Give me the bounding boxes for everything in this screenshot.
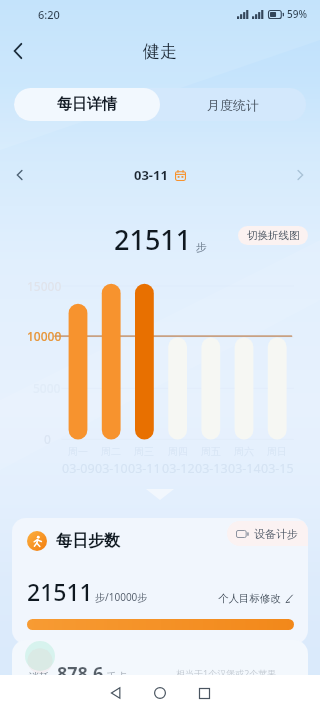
button[interactable]: 切换折线图 — [238, 226, 308, 245]
staticText: 每日步数 — [56, 531, 120, 551]
staticText: 周四 — [168, 445, 188, 458]
staticText: 相当于1个汉堡或2个苹果 — [176, 667, 277, 679]
button[interactable]: 每日详情 — [14, 88, 160, 121]
staticText: 月度统计 — [207, 97, 259, 113]
staticText: 6:20 — [38, 7, 60, 22]
staticText: 周六 — [234, 445, 254, 458]
staticText: 周二 — [101, 445, 121, 458]
button[interactable]: 消耗 — [12, 640, 308, 711]
staticText: 03-11 — [134, 166, 168, 184]
staticText: 03-10 — [95, 460, 128, 477]
staticText: 步/10000步 — [95, 590, 148, 604]
button[interactable]: Home — [138, 675, 182, 711]
staticText: 周日 — [267, 445, 287, 458]
staticText: 03-15 — [261, 460, 294, 477]
staticText: 878.6 — [57, 661, 104, 686]
button[interactable]: 03-11 — [134, 166, 186, 184]
staticText: 21511 — [114, 221, 192, 258]
staticText: 设备计步 — [254, 527, 298, 541]
button[interactable]: Back — [1, 34, 35, 68]
staticText: 03-14 — [228, 460, 261, 477]
staticText: 个人目标修改 — [218, 592, 281, 605]
staticText: 消耗 — [28, 670, 50, 684]
staticText: 59% — [287, 7, 307, 21]
button[interactable]: Previous day — [6, 161, 34, 189]
staticText: 每日详情 — [57, 95, 117, 114]
staticText: 03-11 — [128, 460, 161, 477]
staticText: 10000 — [27, 328, 62, 344]
staticText: 0 — [44, 431, 51, 447]
staticText: 周一 — [68, 445, 88, 458]
staticText: 步 — [196, 240, 207, 254]
staticText: 健走 — [143, 41, 177, 62]
staticText: 周五 — [201, 445, 221, 458]
staticText: 21511 — [27, 576, 93, 607]
staticText: 千卡 — [106, 670, 128, 684]
button[interactable]: 个人目标修改 — [218, 592, 294, 605]
staticText: 03-13 — [195, 460, 228, 477]
button[interactable]: Recent apps — [182, 675, 226, 711]
staticText: 切换折线图 — [247, 229, 300, 242]
button[interactable]: 月度统计 — [160, 88, 306, 121]
button[interactable]: Back — [94, 675, 138, 711]
staticText: 周三 — [134, 445, 154, 458]
staticText: 15000 — [27, 278, 62, 294]
staticText: 03-09 — [62, 460, 95, 477]
button[interactable]: Next day — [286, 161, 314, 189]
button[interactable]: 设备计步 — [227, 521, 308, 546]
staticText: 03-12 — [162, 460, 195, 477]
